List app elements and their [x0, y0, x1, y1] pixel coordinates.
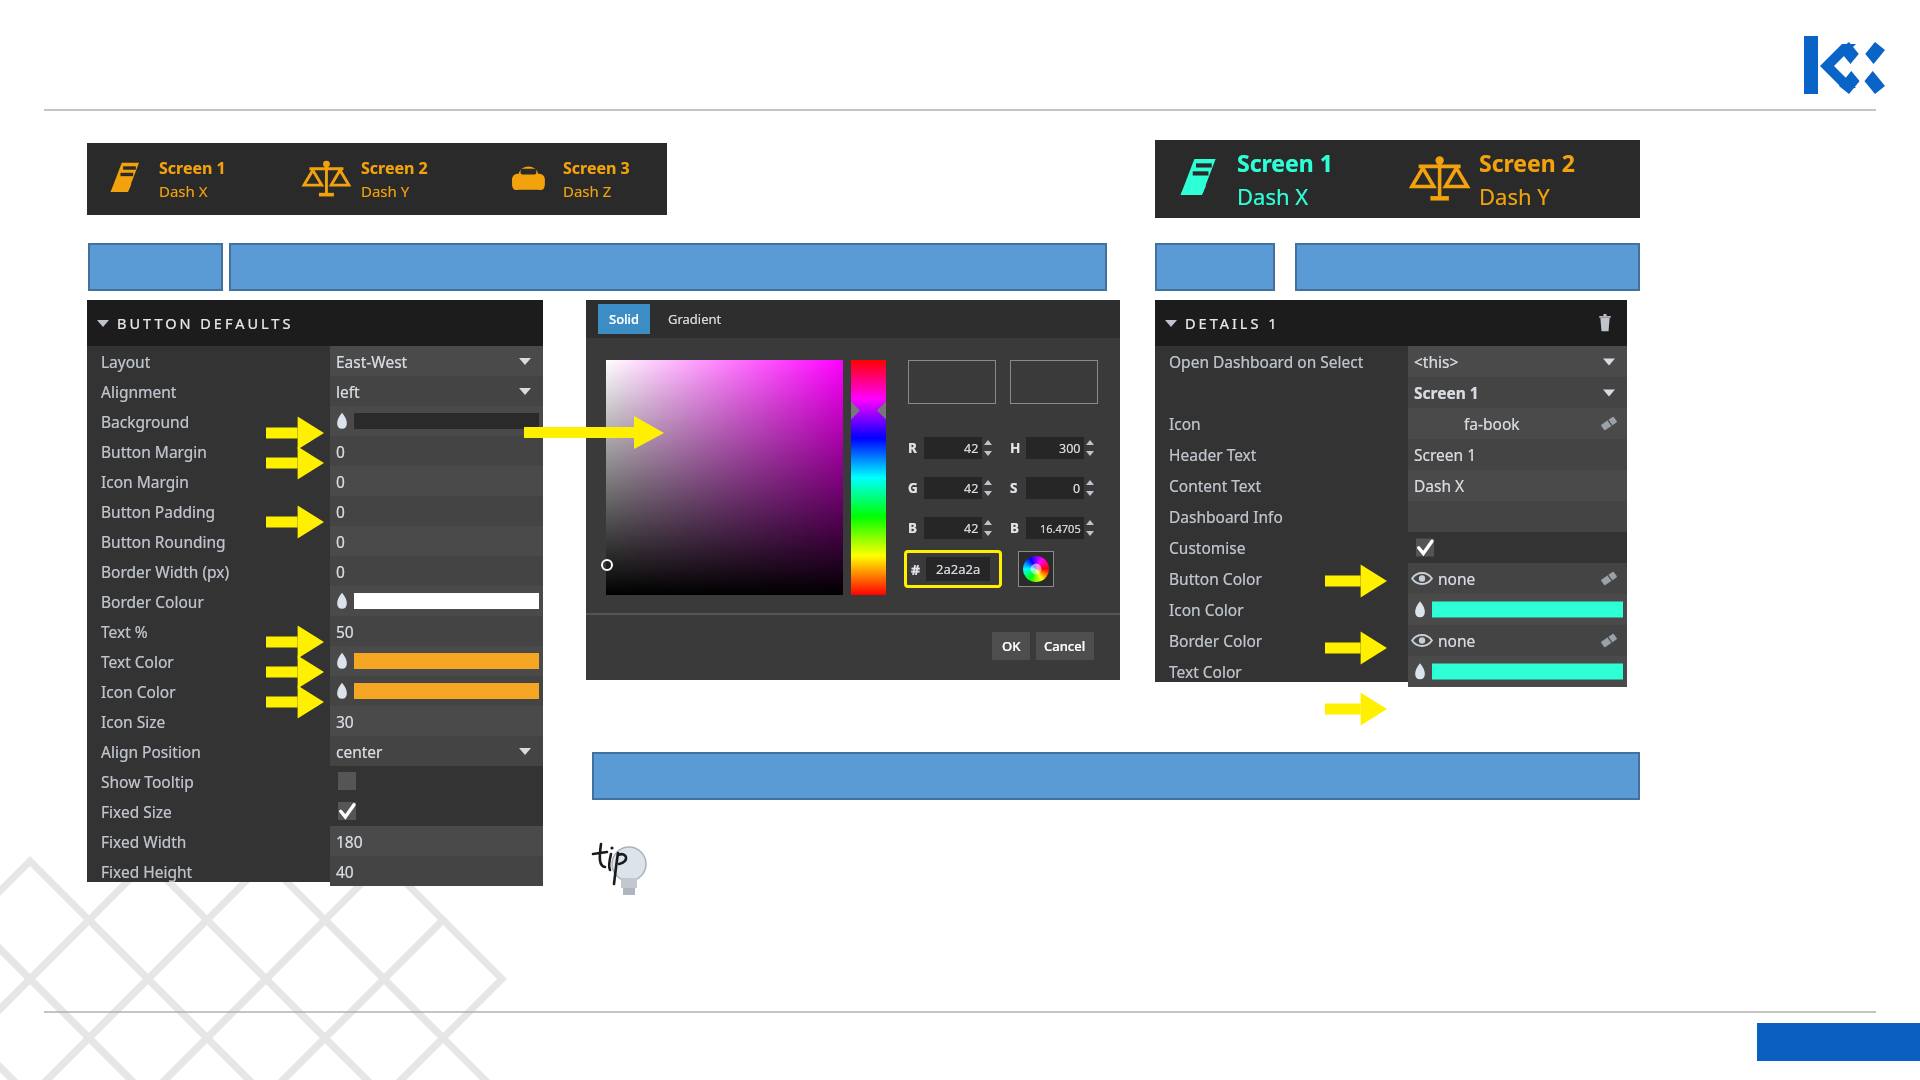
staticText: Show Tooltip	[101, 771, 194, 792]
button[interactable]: Alignment	[87, 376, 543, 406]
button[interactable]: Header Text	[1155, 439, 1627, 470]
button[interactable]: Customise	[1155, 532, 1627, 563]
button[interactable]: Screen 1	[87, 143, 289, 215]
staticText: Screen 1	[1237, 147, 1333, 178]
staticText: 0	[336, 471, 345, 492]
button[interactable]	[1295, 243, 1640, 291]
button[interactable]: Icon Size	[87, 706, 543, 736]
staticText: R	[908, 439, 917, 457]
button[interactable]: Text %	[87, 616, 543, 646]
staticText: 16.4705	[1040, 521, 1081, 536]
button[interactable]	[229, 243, 1107, 291]
staticText: Icon	[1169, 413, 1201, 434]
staticText: Solid	[609, 310, 640, 328]
button[interactable]: Screen 2	[1397, 140, 1639, 218]
staticText: Dash X	[1414, 475, 1465, 496]
button[interactable]: Show Tooltip	[87, 766, 543, 796]
staticText: 42	[964, 520, 979, 537]
button[interactable]: Border Colour	[87, 586, 543, 616]
button[interactable]: Button Margin	[87, 436, 543, 466]
button[interactable]: Screen 1	[1155, 140, 1397, 218]
staticText: Fixed Height	[101, 861, 193, 882]
staticText: Icon Size	[101, 711, 166, 732]
staticText: Icon Color	[101, 681, 176, 702]
button[interactable]: Icon	[1155, 408, 1627, 439]
staticText: Screen 1	[1414, 382, 1479, 403]
staticText: Screen 3	[563, 157, 630, 179]
staticText: #	[911, 560, 921, 579]
staticText: Button Padding	[101, 501, 216, 522]
button[interactable]: Open Dashboard on Select	[1155, 346, 1627, 377]
staticText: Icon Color	[1169, 599, 1244, 620]
staticText: Screen 2	[1479, 147, 1575, 178]
button[interactable]	[592, 752, 1640, 800]
staticText: Cancel	[1044, 637, 1086, 655]
staticText: Dash Y	[1479, 181, 1550, 211]
button[interactable]: OK	[992, 632, 1030, 660]
staticText: B	[1010, 519, 1019, 537]
staticText: 0	[336, 441, 345, 462]
staticText: Background	[101, 411, 190, 432]
button[interactable]: Icon Color	[1155, 594, 1627, 625]
button[interactable]: Text Color	[87, 646, 543, 676]
staticText: Button Color	[1169, 568, 1262, 589]
button[interactable]: Cancel	[1036, 632, 1094, 660]
button[interactable]: Fixed Size	[87, 796, 543, 826]
staticText: Screen 2	[361, 157, 428, 179]
staticText: Header Text	[1169, 444, 1257, 465]
staticText: Icon Margin	[101, 471, 189, 492]
staticText: Text %	[101, 621, 148, 642]
button[interactable]: Colour wheel	[1018, 551, 1054, 587]
staticText: Border Color	[1169, 630, 1263, 651]
staticText: 42	[964, 440, 979, 457]
button[interactable]: Button Padding	[87, 496, 543, 526]
button[interactable]: BUTTON DEFAULTS	[87, 300, 543, 346]
button[interactable]: Content Text	[1155, 470, 1627, 501]
button[interactable]: Solid	[598, 304, 650, 334]
staticText: left	[336, 381, 360, 402]
button[interactable]: Icon Margin	[87, 466, 543, 496]
staticText: Screen 1	[159, 157, 226, 179]
staticText: Customise	[1169, 537, 1246, 558]
button[interactable]	[88, 243, 223, 291]
button[interactable]: Align Position	[87, 736, 543, 766]
staticText: Border Colour	[101, 591, 204, 612]
staticText: Border Width (px)	[101, 561, 230, 582]
staticText: Button Margin	[101, 441, 207, 462]
button[interactable]: Button Rounding	[87, 526, 543, 556]
staticText: Align Position	[101, 741, 201, 762]
button[interactable]: Button Color	[1155, 563, 1627, 594]
button[interactable]: Screen 3	[491, 143, 693, 215]
staticText: 0	[1073, 480, 1081, 497]
button[interactable]: Text Color	[1155, 656, 1627, 687]
staticText: Fixed Width	[101, 831, 187, 852]
button[interactable]: Fixed Width	[87, 826, 543, 856]
button[interactable]: Background	[87, 406, 543, 436]
button[interactable]: Layout	[87, 346, 543, 376]
staticText: Dashboard Info	[1169, 506, 1283, 527]
staticText: 40	[336, 861, 354, 882]
button[interactable]: Screen 2	[289, 143, 491, 215]
staticText: Dash Y	[361, 181, 410, 201]
staticText: OK	[1002, 637, 1021, 655]
staticText: Text Color	[101, 651, 174, 672]
button[interactable]: Border Color	[1155, 625, 1627, 656]
staticText: Button Rounding	[101, 531, 226, 552]
button[interactable]	[1155, 243, 1275, 291]
staticText: Gradient	[668, 310, 722, 328]
staticText: <this>	[1414, 351, 1459, 372]
button[interactable]: Screen 1	[1155, 377, 1627, 408]
staticText: Layout	[101, 351, 151, 372]
staticText: 0	[336, 561, 345, 582]
staticText: Fixed Size	[101, 801, 172, 822]
staticText: 180	[336, 831, 363, 852]
button[interactable]: Icon Color	[87, 676, 543, 706]
button[interactable]: Border Width (px)	[87, 556, 543, 586]
button[interactable]: Gradient	[658, 304, 732, 334]
staticText: none	[1438, 630, 1476, 651]
button[interactable]: Fixed Height	[87, 856, 543, 886]
button[interactable]: Dashboard Info	[1155, 501, 1627, 532]
staticText: G	[908, 479, 918, 497]
staticText: Dash Z	[563, 181, 612, 201]
button[interactable]: DETAILS 1	[1155, 300, 1627, 346]
